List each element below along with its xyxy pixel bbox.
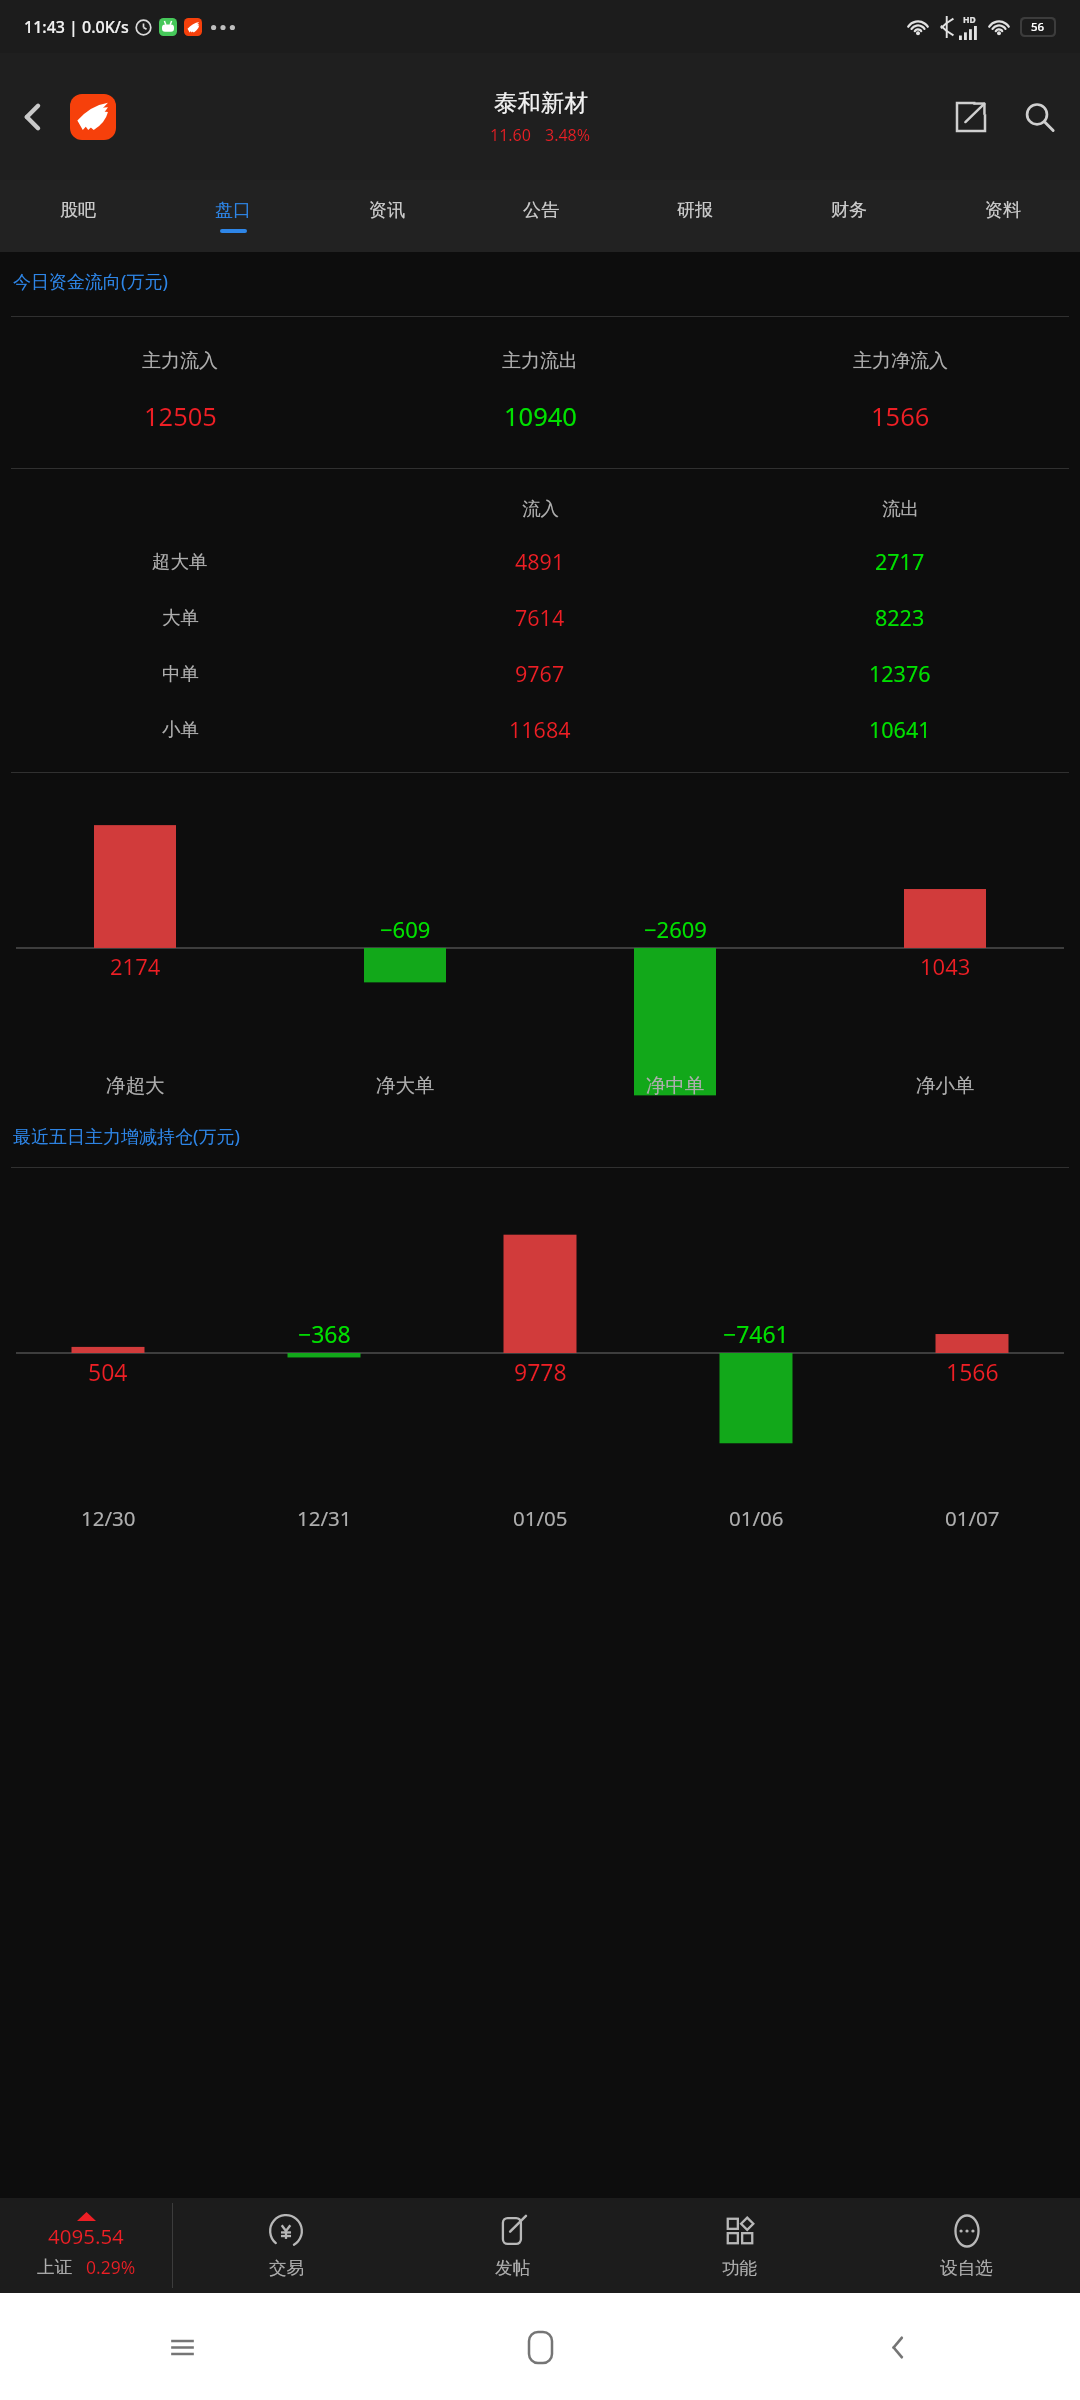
staticText: 01/05 — [513, 1504, 568, 1532]
button[interactable]: App home — [70, 94, 116, 140]
button[interactable]: 研报 — [618, 180, 772, 252]
staticText: 大单 — [162, 606, 199, 629]
staticText: 净小单 — [916, 1073, 975, 1098]
button[interactable]: 公告 — [464, 180, 618, 252]
button[interactable]: 4095.54 — [0, 2198, 172, 2293]
staticText: 最近五日主力增减持仓(万元) — [13, 1124, 240, 1149]
staticText: 交易 — [269, 2257, 304, 2279]
staticText: 2174 — [110, 951, 161, 981]
staticText: 01/06 — [729, 1504, 784, 1532]
staticText: 发帖 — [495, 2257, 530, 2279]
staticText: 设自选 — [940, 2257, 993, 2279]
button[interactable]: Back — [0, 84, 66, 150]
staticText: 中单 — [162, 662, 199, 685]
button[interactable]: 盘口 — [155, 180, 310, 252]
staticText: 泰和新材 — [494, 88, 588, 118]
staticText: 净超大 — [106, 1073, 165, 1098]
button[interactable]: Search — [1012, 90, 1066, 144]
button[interactable]: 交易 — [173, 2198, 399, 2293]
staticText: 0.29% — [86, 2255, 136, 2279]
staticText: 功能 — [722, 2257, 757, 2279]
button[interactable]: 股吧 — [0, 180, 155, 252]
staticText: 资料 — [985, 199, 1021, 222]
staticText: 公告 — [523, 199, 559, 222]
staticText: 12376 — [869, 659, 931, 688]
staticText: 4891 — [515, 547, 565, 576]
staticText: 净中单 — [646, 1073, 705, 1098]
staticText: −2609 — [644, 914, 707, 944]
staticText: 4095.54 — [48, 2222, 124, 2250]
staticText: 12/31 — [297, 1504, 352, 1532]
staticText: 56 — [1031, 19, 1045, 35]
staticText: 12/30 — [81, 1504, 136, 1532]
button[interactable]: 发帖 — [399, 2198, 626, 2293]
button[interactable]: 功能 — [626, 2198, 853, 2293]
staticText: 3.48% — [545, 124, 591, 146]
button[interactable]: Recent apps — [151, 2316, 213, 2378]
staticText: 流出 — [882, 497, 919, 520]
button[interactable]: Share — [944, 90, 998, 144]
staticText: 9778 — [514, 1356, 567, 1387]
staticText: 盘口 — [215, 199, 251, 222]
staticText: 财务 — [831, 199, 867, 222]
staticText: 11.60 — [490, 124, 531, 146]
button[interactable]: 财务 — [772, 180, 926, 252]
staticText: 股吧 — [60, 199, 96, 222]
staticText: 小单 — [162, 718, 199, 741]
button[interactable]: Home — [509, 2316, 571, 2378]
staticText: 1566 — [871, 399, 930, 434]
staticText: 流入 — [522, 497, 559, 520]
staticText: 研报 — [677, 199, 713, 222]
staticText: −368 — [298, 1318, 351, 1349]
staticText: 11684 — [509, 715, 571, 744]
staticText: 12505 — [144, 399, 217, 434]
staticText: 超大单 — [152, 550, 208, 573]
staticText: 11:43 | 0.0K/s — [24, 16, 129, 38]
staticText: HD — [963, 14, 976, 26]
staticText: 10940 — [504, 399, 577, 434]
staticText: 2717 — [875, 547, 925, 576]
button[interactable]: Back — [867, 2316, 929, 2378]
staticText: 主力流出 — [502, 349, 578, 373]
staticText: 8223 — [875, 603, 925, 632]
staticText: 10641 — [869, 715, 931, 744]
staticText: 9767 — [515, 659, 565, 688]
button[interactable]: 资料 — [926, 180, 1080, 252]
staticText: 01/07 — [945, 1504, 1000, 1532]
button[interactable]: 设自选 — [853, 2198, 1080, 2293]
staticText: 资讯 — [369, 199, 405, 222]
button[interactable]: 资讯 — [310, 180, 464, 252]
staticText: 504 — [88, 1356, 128, 1387]
staticText: 1043 — [920, 951, 971, 981]
staticText: 主力净流入 — [853, 349, 948, 373]
staticText: 上证 — [37, 2256, 72, 2278]
staticText: 今日资金流向(万元) — [13, 269, 168, 294]
staticText: 7614 — [515, 603, 565, 632]
staticText: 净大单 — [376, 1073, 435, 1098]
staticText: 主力流入 — [142, 349, 218, 373]
staticText: −609 — [380, 914, 431, 944]
staticText: 1566 — [946, 1356, 999, 1387]
staticText: −7461 — [723, 1318, 789, 1349]
